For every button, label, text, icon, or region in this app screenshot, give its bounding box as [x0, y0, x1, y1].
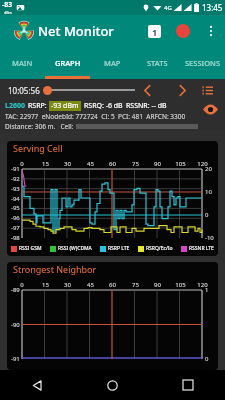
button[interactable]: Previous [139, 82, 155, 98]
staticText: RSSI GSM [19, 245, 42, 252]
staticText: 105 [175, 281, 186, 289]
staticText: 75 [132, 160, 139, 168]
staticText: 60 [109, 281, 116, 289]
staticText: 4G [164, 4, 172, 12]
staticText: RSRQ/Ec/Io [146, 245, 173, 252]
button[interactable]: STATS [135, 47, 180, 79]
button[interactable]: GRAPH [45, 47, 90, 79]
staticText: GRAPH [55, 58, 81, 68]
staticText: 60 [109, 160, 116, 168]
staticText: -94 [11, 195, 20, 203]
staticText: MAP [104, 58, 121, 68]
staticText: -93 [11, 185, 20, 193]
staticText: -10 [205, 234, 214, 242]
staticText: RSSNR: -- dB [126, 101, 167, 111]
staticText: -83 [2, 0, 13, 10]
staticText: dBm [4, 10, 12, 15]
staticText: 20 [205, 165, 212, 173]
button[interactable]: Record [176, 24, 190, 38]
button[interactable]: SESSIONS [180, 47, 225, 79]
staticText: L2600 [5, 101, 25, 111]
staticText: STATS [147, 58, 168, 68]
staticText: 0 [20, 281, 24, 289]
staticText: 30 [64, 281, 71, 289]
staticText: 75 [132, 281, 139, 289]
button[interactable]: Back [0, 370, 75, 400]
staticText: 10:05:56 [8, 85, 40, 96]
button[interactable]: Toggle visibility [198, 97, 222, 121]
staticText: Strongest Neighbor [13, 263, 97, 275]
button[interactable]: MAP [90, 47, 135, 79]
button[interactable]: List [199, 82, 215, 98]
staticText: -90 [11, 321, 20, 329]
button[interactable]: Home [75, 370, 150, 400]
staticText: -95 [11, 204, 20, 212]
button[interactable]: Next [174, 82, 190, 98]
button[interactable]: Time slider [43, 85, 131, 95]
staticText: RSSI (W)CDMA [58, 245, 92, 252]
staticText: 90 [154, 160, 161, 168]
staticText: RSRP: [28, 101, 47, 111]
staticText: Distance: 306 m. Cell: [5, 122, 74, 131]
staticText: 13:45 [202, 2, 223, 13]
staticText: -91 [11, 355, 20, 363]
staticText: 105 [175, 160, 186, 168]
staticText: 30 [64, 160, 71, 168]
staticText: Serving Cell [13, 142, 63, 154]
button[interactable]: More options [203, 23, 219, 39]
staticText: 10 [205, 188, 212, 196]
button[interactable]: SIM 1 [148, 25, 161, 38]
staticText: 0 [20, 160, 24, 168]
staticText: 1 [152, 26, 158, 38]
staticText: 15 [42, 281, 49, 289]
staticText: 90 [154, 281, 161, 289]
staticText: 120 [197, 281, 208, 289]
staticText: -89 [11, 286, 20, 294]
staticText: 1 [205, 286, 209, 294]
button[interactable]: MAIN [0, 47, 45, 79]
staticText: -97 [11, 224, 20, 232]
staticText: -96 [11, 214, 20, 222]
staticText: RSSNR LTE [189, 245, 214, 252]
staticText: RSRP LTE [108, 245, 130, 252]
staticText: MAIN [12, 58, 33, 68]
staticText: SESSIONS [185, 58, 221, 68]
staticText: TAC: 22977 eNodebId: 772724 CI: 5 PCI: 4… [5, 112, 186, 121]
button[interactable]: Recents [150, 370, 225, 400]
staticText: 120 [197, 160, 208, 168]
staticText: -93 dBm [51, 101, 79, 111]
staticText: 45 [87, 160, 94, 168]
staticText: -91 [11, 165, 20, 173]
staticText: 0 [205, 211, 209, 219]
staticText: 15 [42, 160, 49, 168]
staticText: 45 [87, 281, 94, 289]
staticText: Net Monitor [38, 22, 114, 40]
staticText: 0 [205, 355, 209, 363]
staticText: -92 [11, 175, 20, 183]
staticText: RSRQ: -6 dB [84, 101, 123, 111]
staticText: -98 [11, 234, 20, 242]
